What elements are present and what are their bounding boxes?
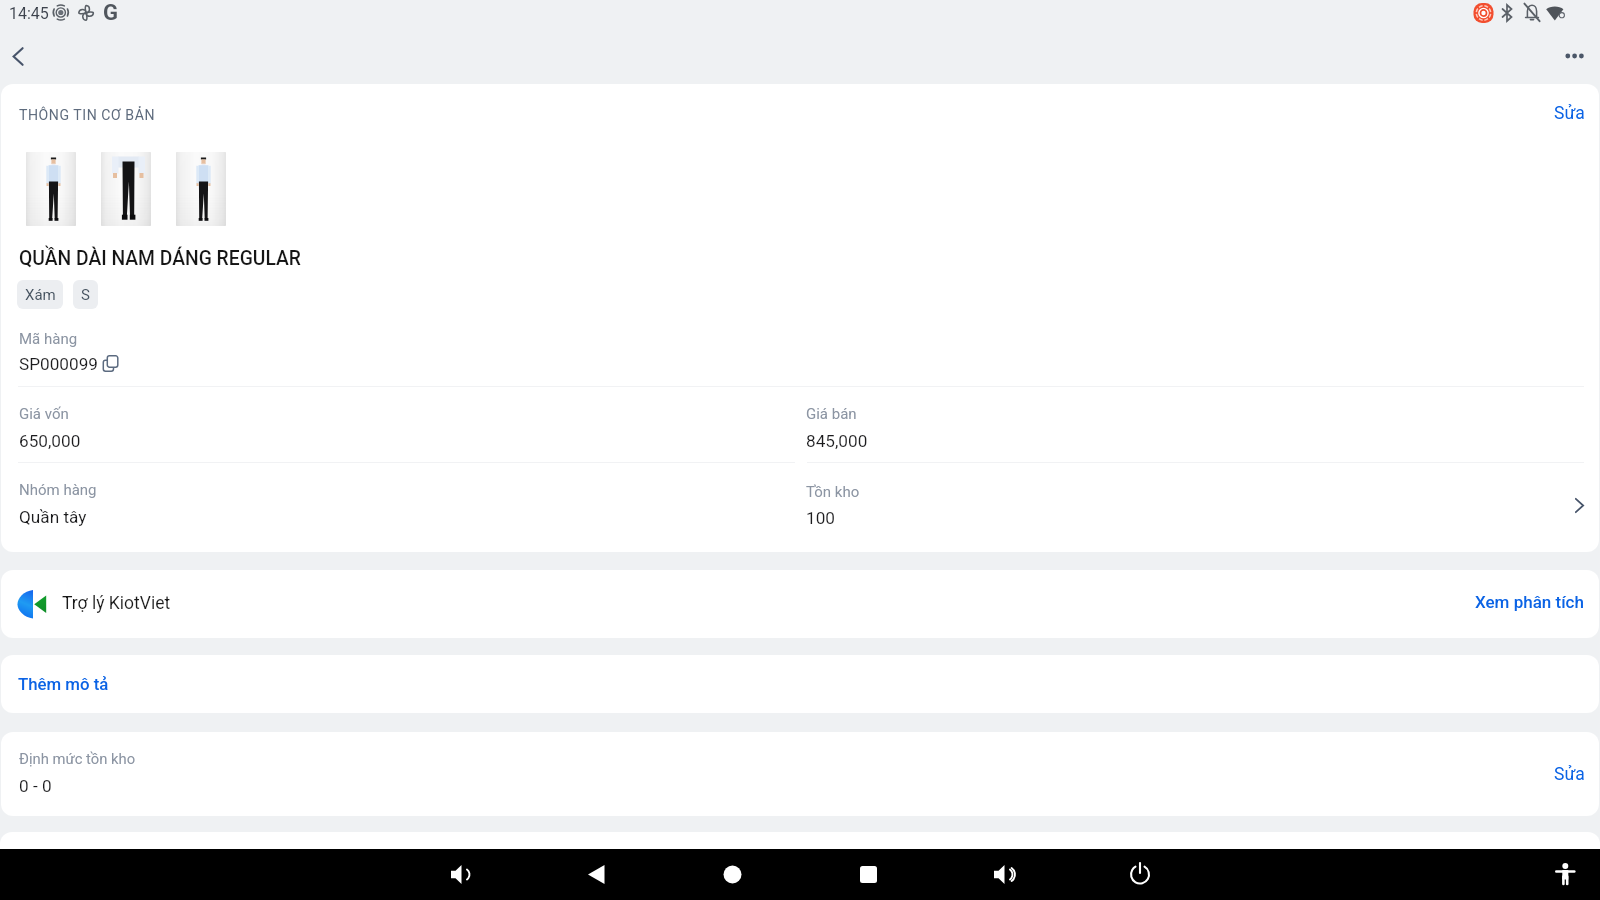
button[interactable]: Sửa xyxy=(1539,90,1595,130)
button[interactable]: Product photo xyxy=(26,152,76,226)
staticText: Giá bán xyxy=(806,405,857,423)
button[interactable]: Power xyxy=(1116,849,1164,900)
button[interactable]: Trợ lý KiotViet xyxy=(56,582,186,626)
button[interactable]: Thêm mô tả xyxy=(1,655,1599,713)
staticText: 845,000 xyxy=(806,431,868,451)
button[interactable]: Product photo xyxy=(176,152,226,226)
button[interactable]: Nhóm hàng xyxy=(1,463,795,537)
button[interactable]: Stock on hand detail xyxy=(795,463,1599,537)
staticText: SP000099 xyxy=(19,354,99,374)
button[interactable]: More options xyxy=(1553,33,1599,79)
staticText: Mã hàng xyxy=(19,330,78,348)
staticText: Nhóm hàng xyxy=(19,481,97,499)
staticText: Xem phân tích xyxy=(1475,592,1584,612)
staticText: G xyxy=(103,0,118,26)
button[interactable]: Copy product code xyxy=(101,353,121,373)
button[interactable]: Back xyxy=(0,33,46,79)
staticText: Sửa xyxy=(1554,764,1585,785)
staticText: Thêm mô tả xyxy=(18,674,109,694)
button[interactable]: Accessibility xyxy=(1541,849,1589,900)
staticText: QUẦN DÀI NAM DÁNG REGULAR xyxy=(19,247,301,270)
button[interactable]: S xyxy=(73,280,98,309)
staticText: 650,000 xyxy=(19,431,81,451)
staticText: Sửa xyxy=(1554,103,1585,124)
staticText: Xám xyxy=(25,286,56,304)
button[interactable]: Volume down xyxy=(436,849,484,900)
staticText: S xyxy=(81,286,90,304)
staticText: Tồn kho xyxy=(806,483,860,501)
button[interactable]: Sửa xyxy=(1539,751,1595,791)
staticText: Định mức tồn kho xyxy=(19,750,136,767)
staticText: Trợ lý KiotViet xyxy=(62,593,171,614)
button[interactable]: Xem phân tích xyxy=(1467,582,1591,626)
button[interactable]: Product photo xyxy=(101,152,151,226)
staticText: THÔNG TIN CƠ BẢN xyxy=(19,107,156,124)
staticText: 100 xyxy=(806,508,835,528)
button[interactable]: Recent apps xyxy=(844,849,892,900)
button[interactable]: Volume up xyxy=(979,849,1027,900)
button[interactable]: Back xyxy=(572,849,620,900)
staticText: Quần tây xyxy=(19,507,87,527)
staticText: 14:45 xyxy=(9,4,49,23)
staticText: 0 - 0 xyxy=(19,776,52,796)
button[interactable]: Home xyxy=(708,849,756,900)
staticText: Giá vốn xyxy=(19,405,69,423)
button[interactable]: Xám xyxy=(17,280,63,309)
